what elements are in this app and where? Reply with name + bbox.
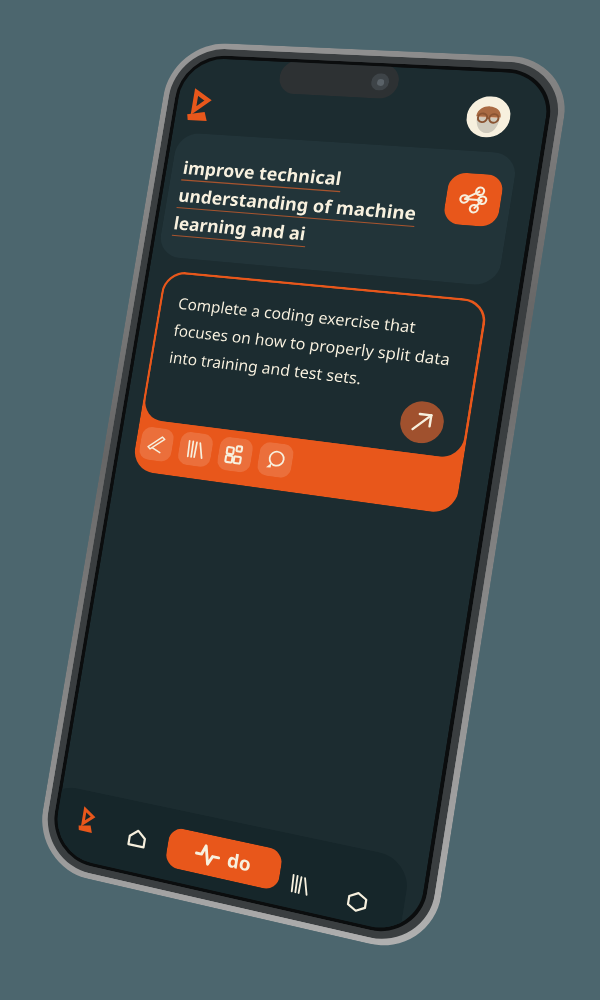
button[interactable]: Open task — [397, 399, 447, 446]
staticText: improve technical — [181, 155, 344, 190]
button[interactable]: Home — [127, 827, 148, 849]
button[interactable]: Profile — [463, 95, 514, 139]
button[interactable]: do — [164, 826, 284, 891]
staticText: learning and ai — [172, 210, 308, 245]
button[interactable]: Library — [289, 874, 310, 896]
button[interactable]: Apps — [216, 436, 254, 473]
staticText: understanding of machine — [177, 183, 418, 225]
button[interactable]: Library — [176, 431, 214, 468]
button[interactable]: Chat — [256, 441, 295, 479]
button[interactable]: More — [346, 890, 369, 914]
button[interactable]: Edit — [138, 426, 175, 463]
staticText: do — [225, 846, 254, 878]
button[interactable]: Share — [442, 172, 505, 228]
button[interactable]: App logo — [74, 805, 103, 836]
button[interactable]: App logo — [181, 88, 222, 123]
button[interactable]: Complete a coding exercise that focuses … — [142, 273, 486, 459]
staticText: Complete a coding exercise that focuses … — [168, 292, 457, 399]
